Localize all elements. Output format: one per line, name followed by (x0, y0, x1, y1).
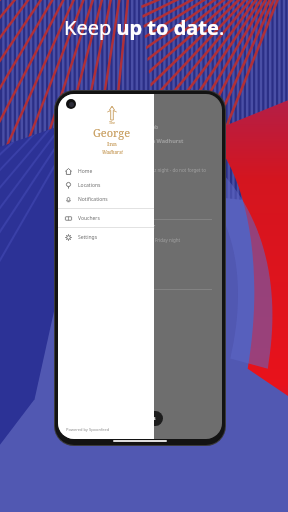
staticText: Wadhurst (102, 149, 123, 155)
button[interactable]: QUIZ NIGHT (58, 150, 222, 220)
button[interactable]: Vouchers (58, 211, 154, 225)
staticText: Inn (107, 140, 117, 148)
staticText: KARAOKE NIGHT (114, 224, 156, 231)
staticText: Settings (78, 234, 98, 241)
staticText: Hi Rob (142, 124, 159, 131)
button[interactable]: Notifications (58, 192, 154, 206)
staticText: Powered by Spoonfeed (66, 427, 110, 432)
button[interactable]: Rewards (118, 411, 163, 426)
staticText: Locations (78, 182, 101, 189)
staticText: Vouchers (78, 215, 100, 222)
staticText: The (109, 120, 116, 125)
button[interactable]: Settings (58, 230, 154, 244)
staticText: Keep up to date. (64, 14, 225, 41)
staticText: Grab the mic every Friday night (114, 237, 181, 243)
button[interactable]: Home (58, 164, 154, 178)
staticText: Rewards (135, 415, 156, 422)
staticText: Home (78, 168, 93, 175)
staticText: Sunday night is quiz night - do not forg… (114, 167, 212, 179)
button[interactable]: Locations (58, 178, 154, 192)
staticText: Notifications (78, 196, 108, 203)
button[interactable]: KARAOKE NIGHT (58, 220, 222, 290)
staticText: George (93, 125, 131, 140)
staticText: at The George Inn Wadhurst (106, 137, 184, 144)
